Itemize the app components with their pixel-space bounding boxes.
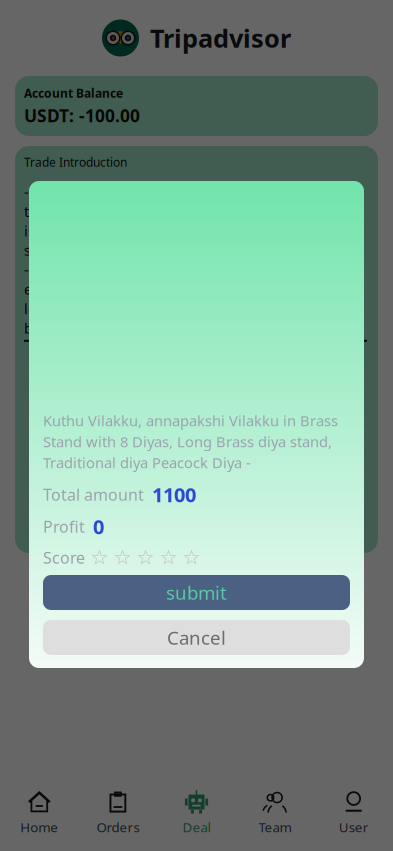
staticText: Account Balance <box>24 85 123 101</box>
staticText: - The platform randomly matches orders <box>24 260 303 279</box>
staticText: 0 <box>93 513 104 540</box>
staticText: Deal <box>182 818 210 836</box>
button[interactable]: submit <box>43 575 350 610</box>
staticText: Traditional diya Peacock Diya - <box>43 453 251 472</box>
staticText: - Each account can only participate in o… <box>24 182 308 201</box>
staticText: each time according to the membership <box>24 279 299 299</box>
staticText: Team <box>259 818 292 836</box>
staticText: User <box>339 818 369 836</box>
button[interactable]: Team <box>236 779 314 851</box>
staticText: USDT: -100.00 <box>24 104 140 127</box>
staticText: issued immediately after the order is <box>24 221 276 240</box>
button[interactable]: User <box>314 779 393 851</box>
staticText: Score <box>43 547 85 568</box>
staticText: Stand with 8 Diyas, Long Brass diya stan… <box>43 432 332 451</box>
staticText: Orders <box>96 818 139 836</box>
button[interactable]: Home <box>0 779 79 851</box>
button[interactable]: Deal <box>157 779 236 851</box>
staticText: 1100 <box>152 481 196 508</box>
staticText: submit <box>166 580 227 605</box>
staticText: Kuthu Vilakku, annapakshi Vilakku in Bra… <box>43 411 338 430</box>
staticText: task at a time, and the commission will … <box>24 201 313 221</box>
button[interactable]: Orders <box>79 779 157 851</box>
staticText: Tripadvisor <box>150 21 291 55</box>
staticText: level; please make sure the account <box>24 299 267 318</box>
staticText: balance is sufficient. <box>24 318 163 338</box>
staticText: Profit <box>43 516 85 537</box>
staticText: Total amount <box>43 484 144 505</box>
staticText: Home <box>20 818 58 836</box>
staticText: Trade Introduction <box>24 154 127 170</box>
button[interactable]: Cancel <box>43 620 350 655</box>
staticText: Cancel <box>167 625 226 650</box>
staticText: submitted successfully. <box>24 240 183 260</box>
